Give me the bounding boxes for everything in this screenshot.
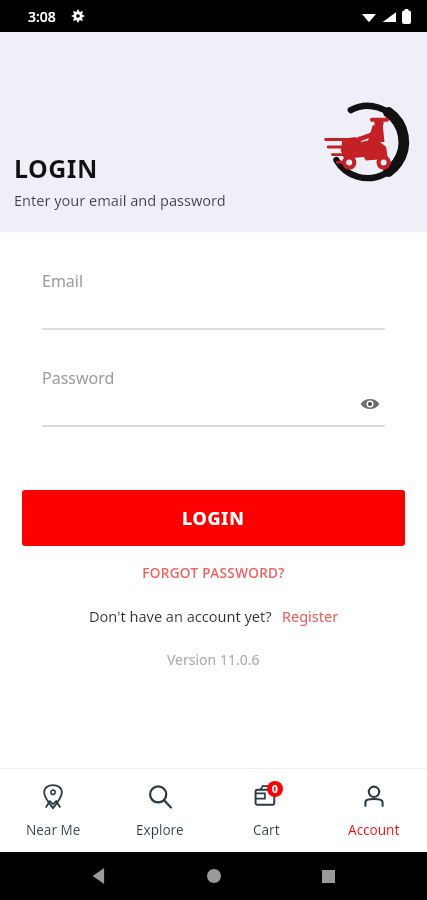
staticText: Near Me xyxy=(26,821,81,839)
button[interactable]: FORGOT PASSWORD? xyxy=(0,564,427,582)
staticText: Register xyxy=(282,606,339,626)
button[interactable]: 0 xyxy=(213,769,320,852)
staticText: LOGIN xyxy=(14,151,98,185)
staticText: Enter your email and password xyxy=(14,190,226,210)
staticText: Cart xyxy=(253,821,280,839)
staticText: Password xyxy=(42,367,115,389)
staticText: FORGOT PASSWORD? xyxy=(142,564,285,582)
button[interactable]: Near Me xyxy=(0,769,106,852)
button[interactable]: Register xyxy=(282,606,339,626)
button[interactable]: LOGIN xyxy=(22,490,405,546)
staticText: Version 11.0.6 xyxy=(167,650,260,669)
staticText: LOGIN xyxy=(182,506,245,531)
staticText: Account xyxy=(348,821,400,839)
button[interactable]: Show password xyxy=(355,389,385,419)
staticText: Explore xyxy=(136,821,184,839)
staticText: 0 xyxy=(272,782,278,796)
staticText: Email xyxy=(42,270,84,292)
button[interactable]: Account xyxy=(320,769,427,852)
staticText: Don't have an account yet? xyxy=(89,606,272,626)
staticText: 3:08 xyxy=(28,7,56,26)
button[interactable]: Explore xyxy=(106,769,213,852)
